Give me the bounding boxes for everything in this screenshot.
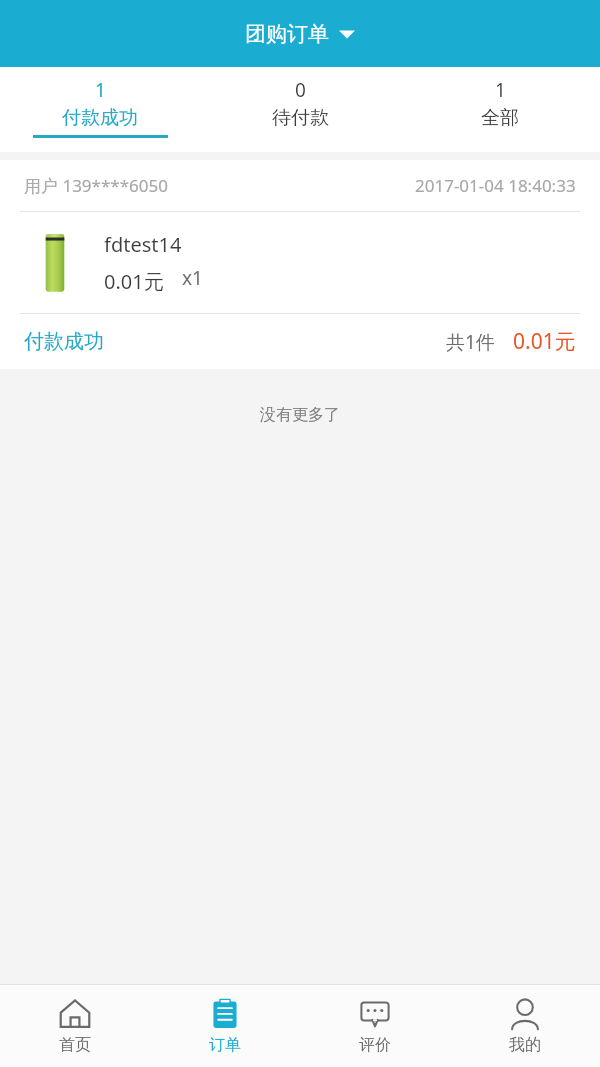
staticText: x1 bbox=[182, 265, 203, 291]
staticText: 没有更多了 bbox=[260, 405, 340, 425]
staticText: fdtest14 bbox=[104, 231, 182, 258]
button[interactable]: 1 bbox=[400, 67, 600, 152]
staticText: 共1件 bbox=[446, 329, 495, 355]
staticText: 团购订单 bbox=[245, 21, 329, 47]
staticText: 我的 bbox=[509, 1035, 541, 1055]
button[interactable]: 1 bbox=[0, 67, 200, 152]
staticText: 0.01元 bbox=[104, 268, 164, 295]
button[interactable]: 订单 bbox=[150, 985, 300, 1067]
staticText: 全部 bbox=[481, 106, 519, 130]
button[interactable]: 团购订单 bbox=[233, 15, 367, 53]
staticText: 付款成功 bbox=[62, 106, 138, 130]
staticText: 评价 bbox=[359, 1035, 391, 1055]
staticText: 待付款 bbox=[272, 106, 329, 130]
staticText: 2017-01-04 18:40:33 bbox=[415, 174, 576, 197]
button[interactable]: 0 bbox=[200, 67, 400, 152]
button[interactable]: 评价 bbox=[300, 985, 450, 1067]
staticText: 1 bbox=[95, 77, 106, 103]
button[interactable]: 我的 bbox=[450, 985, 600, 1067]
button[interactable]: fdtest14 bbox=[0, 212, 600, 313]
staticText: 订单 bbox=[209, 1035, 241, 1055]
staticText: 首页 bbox=[59, 1035, 91, 1055]
staticText: 0 bbox=[295, 77, 306, 103]
staticText: 0.01元 bbox=[513, 327, 576, 356]
button[interactable]: 首页 bbox=[0, 985, 150, 1067]
staticText: 付款成功 bbox=[24, 329, 104, 354]
staticText: 用户 139****6050 bbox=[24, 174, 168, 197]
staticText: 1 bbox=[495, 77, 506, 103]
